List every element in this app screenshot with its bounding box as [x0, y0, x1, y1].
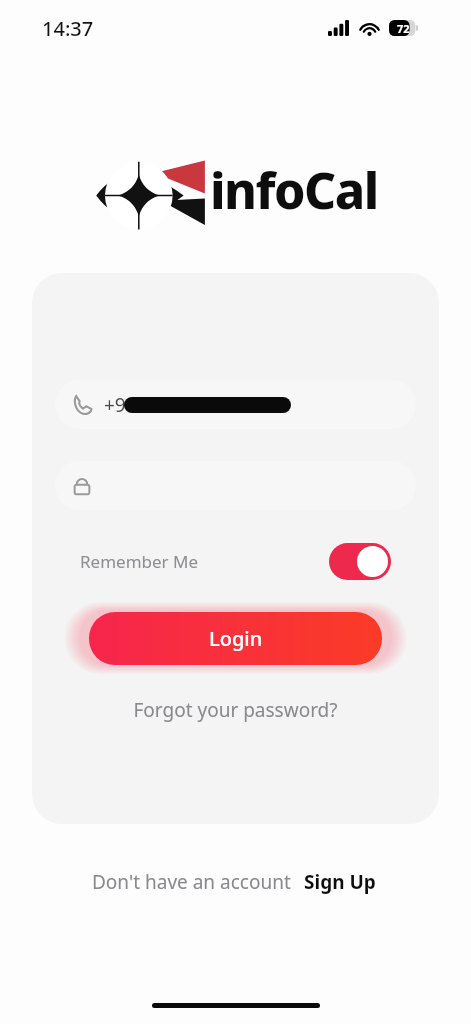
- button[interactable]: Login: [89, 612, 382, 665]
- staticText: infoCal: [210, 156, 378, 224]
- staticText: +9: [104, 392, 126, 418]
- staticText: 14:37: [42, 15, 94, 42]
- button[interactable]: Remember Me toggle: [329, 543, 391, 580]
- button[interactable]: Password: [55, 461, 416, 510]
- other: Phone: [73, 394, 93, 415]
- staticText: Remember Me: [80, 550, 199, 573]
- staticText: Sign Up: [304, 869, 376, 895]
- staticText: Login: [209, 625, 263, 652]
- button[interactable]: Forgot your password?: [123, 692, 348, 728]
- button[interactable]: Phone: [55, 380, 416, 429]
- button[interactable]: Sign Up: [300, 866, 380, 898]
- other: Password: [73, 475, 91, 497]
- staticText: Forgot your password?: [133, 697, 338, 723]
- staticText: Don't have an account: [92, 869, 291, 895]
- staticText: 72: [397, 21, 410, 36]
